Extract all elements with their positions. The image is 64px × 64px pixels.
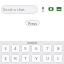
button[interactable]: Gallery (55, 5, 63, 13)
staticText: Press (28, 21, 37, 26)
button[interactable]: 6 (31, 44, 41, 53)
button[interactable]: Voice message (39, 5, 47, 13)
button[interactable]: Send a chat (1, 5, 38, 14)
button[interactable]: 7 (42, 44, 52, 53)
button[interactable]: Press (25, 20, 40, 26)
staticText: 4 (14, 46, 17, 51)
staticText: Send a chat (3, 7, 25, 12)
staticText: 8 (57, 46, 60, 51)
button[interactable]: Camera (47, 5, 55, 13)
staticText: suggest (27, 41, 37, 44)
staticText: I (57, 56, 59, 61)
staticText: Y (35, 56, 38, 61)
button[interactable]: T (21, 54, 30, 63)
staticText: 5 (24, 46, 27, 51)
button[interactable]: I (53, 54, 63, 63)
button[interactable]: U (42, 54, 52, 63)
button[interactable]: Y (31, 54, 41, 63)
button[interactable]: E (1, 54, 10, 63)
staticText: 3 (4, 46, 7, 51)
staticText: E (4, 56, 7, 61)
staticText: U (46, 56, 49, 61)
button[interactable]: R (11, 54, 20, 63)
staticText: 6 (35, 46, 38, 51)
staticText: 7 (46, 46, 49, 51)
button[interactable]: 8 (53, 44, 63, 53)
staticText: T (24, 56, 27, 61)
button[interactable]: suggest (0, 41, 64, 44)
button[interactable]: 5 (21, 44, 30, 53)
staticText: R (14, 56, 17, 61)
button[interactable]: 4 (11, 44, 20, 53)
button[interactable]: 3 (1, 44, 10, 53)
